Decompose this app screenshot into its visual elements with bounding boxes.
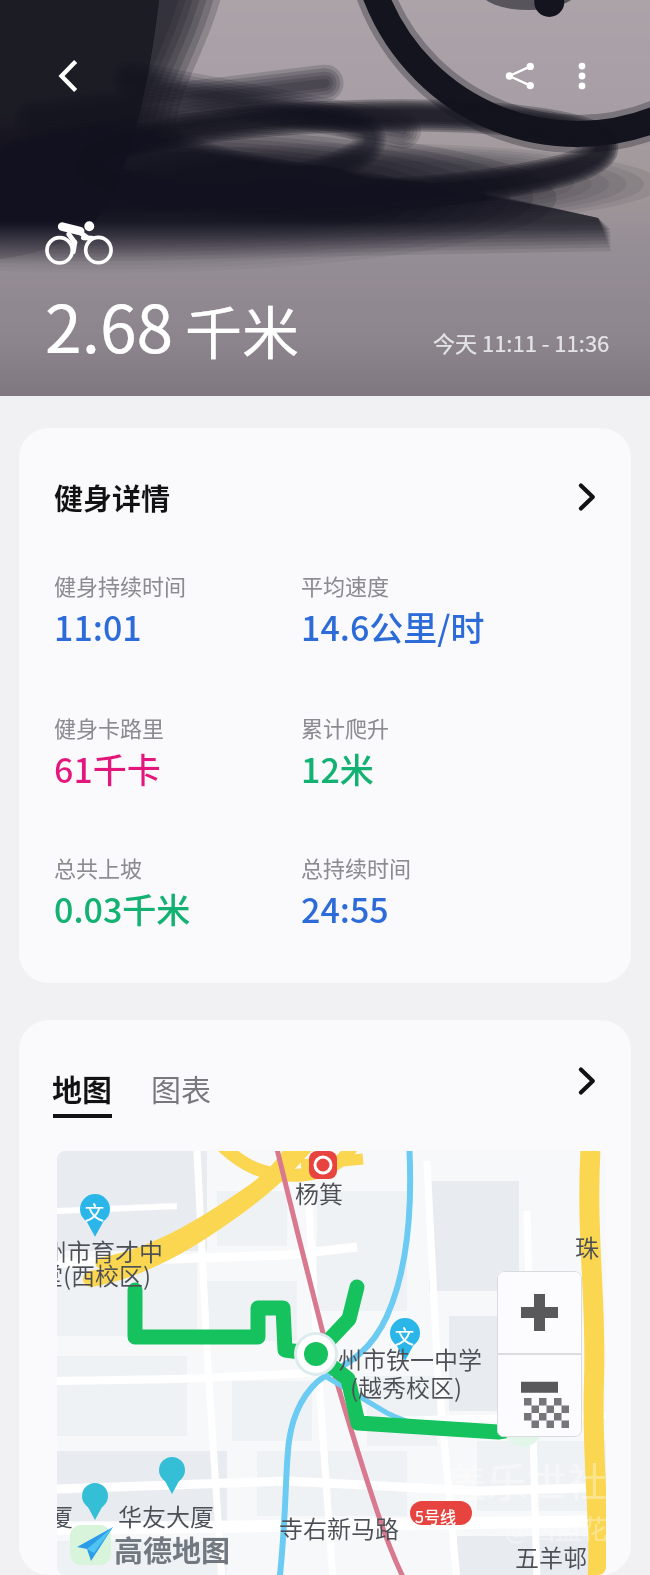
staticText: 文 [85,1198,105,1226]
button[interactable]: Share [493,49,547,103]
staticText: 杨箕 [295,1175,343,1210]
button[interactable]: Back [41,49,95,103]
staticText: 厦 [57,1498,73,1533]
staticText: 图表 [151,1066,211,1109]
staticText: 2.68 [45,276,174,372]
staticText: 0.03千米 [54,884,191,933]
staticText: 5号线 [415,1504,456,1527]
staticText: 总持续时间 [301,851,412,883]
staticText: 14.6公里/时 [301,602,485,651]
staticText: 文 [395,1322,415,1350]
staticText: 健身卡路里 [54,711,165,743]
staticText: 61千卡 [54,744,161,793]
staticText: 总共上坡 [54,851,143,883]
staticText: 州市铁一中学 [338,1341,482,1376]
staticText: 平均速度 [301,569,390,601]
staticText: 高德地图 [114,1528,231,1570]
staticText: 盖乐世社区 [447,1451,606,1509]
staticText: 健身持续时间 [54,569,187,601]
staticText: 地图 [52,1066,112,1109]
staticText: 累计爬升 [301,711,390,743]
staticText: 12米 [301,744,374,793]
button[interactable]: 地图 [52,1066,112,1118]
staticText: (越秀校区) [350,1369,463,1404]
button[interactable]: 健身详情 [19,428,631,983]
button[interactable]: Zoom in [497,1271,582,1353]
staticText: 五羊邨 [515,1539,587,1574]
staticText: 11:01 [54,602,142,651]
staticText: 健身详情 [54,476,171,518]
staticText: 珠 [575,1229,599,1264]
staticText: 今天 11:11 - 11:36 [433,326,610,358]
staticText: 寺右新马路 [279,1510,399,1545]
staticText: 千米 [185,288,299,371]
button[interactable]: More options [555,49,609,103]
staticText: @西蓝花 [505,1509,606,1547]
button[interactable]: 图表 [151,1066,211,1109]
staticText: 华友大厦 [118,1498,214,1533]
staticText: 州市育才中 [57,1233,163,1268]
staticText: 堂(西校区) [57,1257,152,1292]
button[interactable]: Route map [57,1151,606,1575]
staticText: 24:55 [301,884,389,933]
button[interactable]: Zoom out [497,1355,582,1437]
